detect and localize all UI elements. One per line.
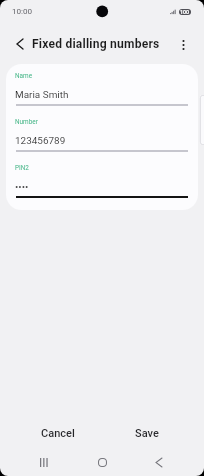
button[interactable]: Back	[145, 450, 173, 475]
staticText: Number	[15, 118, 38, 126]
staticText: Maria Smith	[15, 89, 69, 101]
button[interactable]: More options	[172, 33, 195, 56]
button[interactable]: Navigate up	[8, 32, 31, 55]
staticText: 10:00	[12, 6, 33, 15]
staticText: ••••	[15, 181, 29, 193]
button[interactable]: Cancel	[25, 421, 90, 445]
button[interactable]: Recent apps	[30, 450, 58, 475]
button[interactable]: Save	[114, 421, 179, 445]
button[interactable]: Home	[88, 450, 116, 475]
staticText: Name	[15, 72, 33, 80]
staticText: 100	[180, 9, 190, 15]
staticText: 123456789	[15, 135, 66, 147]
staticText: Cancel	[41, 427, 75, 440]
staticText: Fixed dialling numbers	[32, 37, 160, 51]
staticText: PIN2	[15, 164, 29, 172]
staticText: Save	[135, 427, 159, 440]
